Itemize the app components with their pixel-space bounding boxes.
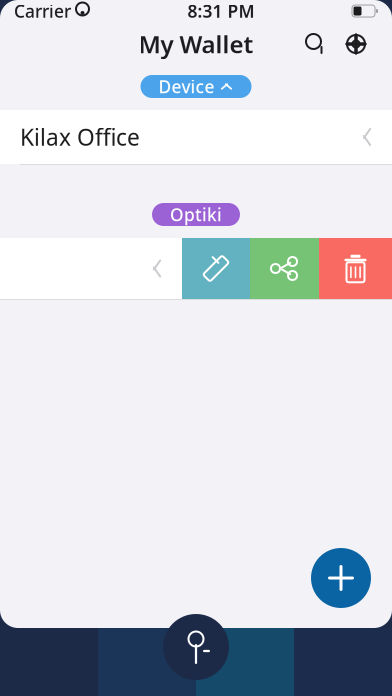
button[interactable]: Device: [140, 75, 251, 98]
button[interactable]: Kilax Office: [0, 110, 392, 164]
staticText: My Wallet: [138, 28, 253, 60]
button[interactable]: Delete: [319, 238, 392, 299]
button[interactable]: Settings: [336, 24, 376, 64]
button[interactable]: Keys: [163, 609, 229, 685]
button[interactable]: Optiki: [152, 203, 240, 226]
staticText: Kilax Office: [20, 122, 140, 152]
staticText: 8:31 PM: [187, 0, 254, 22]
button[interactable]: Edit: [182, 238, 250, 299]
staticText: Carrier: [14, 0, 71, 22]
staticText: Device: [158, 75, 214, 98]
button[interactable]: Share: [250, 238, 319, 299]
staticText: Optiki: [170, 203, 222, 226]
button[interactable]: Search: [296, 24, 336, 64]
button[interactable]: [0, 238, 182, 299]
button[interactable]: Add: [311, 548, 371, 608]
